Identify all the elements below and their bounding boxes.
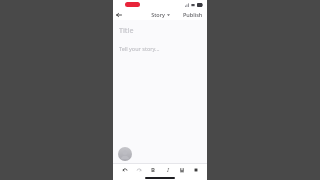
button[interactable]: Profile	[118, 147, 132, 161]
button[interactable]: Title	[113, 25, 207, 36]
button[interactable]: Back	[113, 9, 124, 20]
staticText: B	[151, 166, 155, 174]
button[interactable]: Tell your story...	[113, 43, 207, 147]
staticText: Story	[151, 11, 165, 18]
button[interactable]: Story	[148, 10, 173, 19]
button[interactable]: Redo	[133, 164, 144, 175]
button[interactable]: Bold	[147, 164, 158, 175]
button[interactable]: Undo	[119, 164, 130, 175]
staticText: I	[167, 166, 169, 174]
staticText: Tell your story...	[119, 45, 160, 52]
staticText: Publish	[183, 11, 203, 18]
button[interactable]: Italic	[162, 164, 173, 175]
staticText: Title	[119, 26, 134, 36]
button[interactable]: Publish	[179, 9, 207, 20]
button[interactable]: Underline	[176, 164, 187, 175]
button[interactable]: More	[190, 164, 201, 175]
